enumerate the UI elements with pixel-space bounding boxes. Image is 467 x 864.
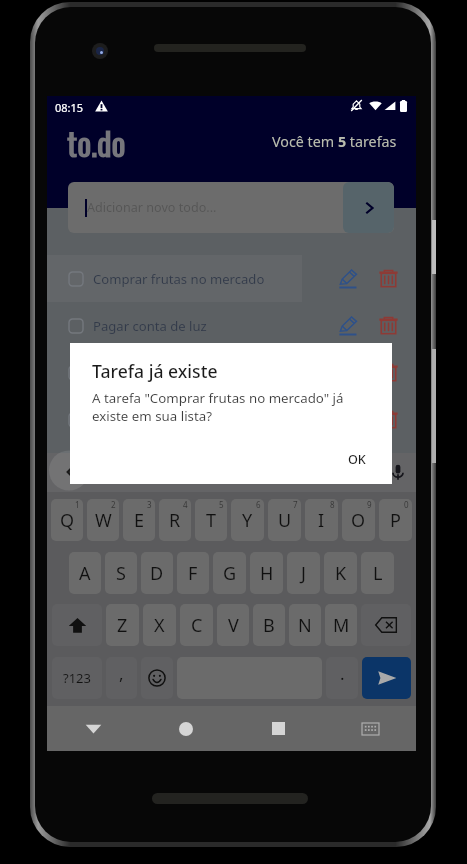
button[interactable]: Enviar — [362, 657, 411, 699]
button[interactable]: Levar o cachorro para passear — [47, 396, 302, 443]
button[interactable]: X — [143, 604, 176, 646]
button[interactable]: Editar — [328, 349, 368, 396]
staticText: X — [154, 613, 165, 638]
button[interactable]: Excluir — [368, 302, 408, 349]
staticText: to.do — [67, 118, 126, 167]
staticText: U — [278, 508, 292, 533]
staticText: Estudar Kotlin — [93, 364, 180, 382]
button[interactable]: Editar — [328, 255, 368, 302]
button[interactable]: OK — [340, 445, 374, 474]
staticText: Q — [60, 508, 75, 533]
staticText: N — [298, 613, 312, 638]
staticText: 0 — [404, 499, 409, 510]
staticText: A — [79, 561, 91, 586]
staticText: H — [260, 561, 274, 586]
button[interactable]: J — [287, 552, 320, 594]
staticText: J — [301, 561, 306, 586]
button[interactable]: Editar — [328, 396, 368, 443]
staticText: P — [390, 508, 401, 533]
button[interactable]: C — [180, 604, 213, 646]
button[interactable]: Excluir — [368, 349, 408, 396]
staticText: Você tem 5 tarefas — [272, 132, 397, 151]
staticText: G — [223, 561, 237, 586]
button[interactable]: E — [123, 499, 155, 541]
button[interactable]: Comprar frutas no mercado — [47, 255, 302, 302]
staticText: 4 — [183, 499, 188, 510]
button[interactable]: Y — [231, 499, 264, 541]
staticText: K — [335, 561, 347, 586]
button[interactable]: Estudar Kotlin — [47, 349, 302, 396]
staticText: 7 — [293, 499, 298, 510]
staticText: 3 — [147, 499, 152, 510]
button[interactable]: Recentes — [232, 706, 324, 751]
button[interactable]: G — [213, 552, 246, 594]
staticText: E — [134, 508, 145, 533]
staticText: I — [318, 508, 325, 533]
button[interactable]: Q — [51, 499, 83, 541]
staticText: D — [150, 561, 164, 586]
staticText: 9 — [367, 499, 372, 510]
staticText: 08:15 — [55, 100, 84, 115]
button[interactable]: Z — [106, 604, 139, 646]
staticText: OK — [348, 451, 366, 468]
staticText: Y — [242, 508, 253, 533]
button[interactable]: P — [379, 499, 412, 541]
button[interactable]: Pagar conta de luz — [47, 302, 302, 349]
staticText: M — [333, 613, 350, 638]
button[interactable]: R — [159, 499, 191, 541]
button[interactable]: K — [324, 552, 357, 594]
button[interactable]: T — [195, 499, 227, 541]
button[interactable]: F — [177, 552, 209, 594]
button[interactable]: W — [87, 499, 119, 541]
staticText: Levar o cachorro para passear — [93, 411, 279, 429]
button[interactable]: V — [217, 604, 249, 646]
button[interactable]: Teclado — [324, 706, 416, 751]
staticText: 5 — [219, 499, 224, 510]
staticText: T — [206, 508, 217, 533]
staticText: 2 — [111, 499, 116, 510]
staticText: 6 — [256, 499, 261, 510]
staticText: W — [95, 508, 112, 533]
button[interactable]: O — [342, 499, 375, 541]
staticText: A tarefa "Comprar frutas no mercado" já … — [92, 389, 372, 425]
button[interactable]: U — [268, 499, 301, 541]
button[interactable]: I — [305, 499, 338, 541]
button[interactable]: . — [326, 657, 358, 699]
button[interactable]: L — [361, 552, 394, 594]
button[interactable]: S — [105, 552, 137, 594]
button[interactable]: Excluir — [368, 443, 408, 490]
button[interactable]: ?123 — [52, 657, 102, 699]
staticText: Z — [117, 613, 128, 638]
staticText: O — [351, 508, 366, 533]
button[interactable]: H — [250, 552, 283, 594]
staticText: R — [169, 508, 181, 533]
button[interactable]: Editar — [328, 302, 368, 349]
button[interactable]: B — [253, 604, 285, 646]
staticText: 1 — [75, 499, 80, 510]
staticText: Pagar conta de luz — [93, 317, 207, 335]
button[interactable]: Início — [140, 706, 232, 751]
button[interactable]: Excluir — [368, 396, 408, 443]
staticText: S — [116, 561, 126, 586]
staticText: V — [228, 613, 239, 638]
staticText: , — [119, 662, 124, 685]
button[interactable]: N — [289, 604, 321, 646]
button[interactable]: Backspace — [361, 604, 411, 646]
staticText: Comprar frutas no mercado — [93, 270, 265, 288]
button[interactable]: Excluir — [368, 255, 408, 302]
button[interactable]: M — [325, 604, 357, 646]
button[interactable]: , — [106, 657, 137, 699]
staticText: L — [373, 561, 383, 586]
staticText: . — [340, 662, 345, 685]
button[interactable]: Editar — [328, 443, 368, 490]
button[interactable]: Emoji — [141, 657, 173, 699]
button[interactable]: A — [69, 552, 101, 594]
button[interactable]: Shift — [52, 604, 102, 646]
button[interactable]: Ler 10 páginas do livro — [47, 443, 302, 490]
staticText: Tarefa já existe — [92, 359, 218, 383]
button[interactable]: D — [141, 552, 173, 594]
button[interactable]: Voltar — [47, 706, 140, 751]
button[interactable]: Adicionar — [343, 182, 394, 233]
